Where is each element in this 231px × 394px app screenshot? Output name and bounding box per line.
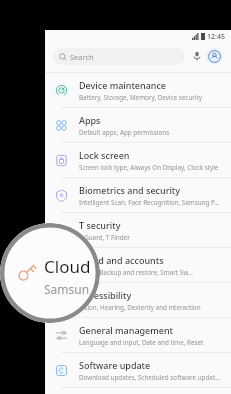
button[interactable]: Account	[206, 48, 223, 65]
button[interactable]: T security	[45, 213, 231, 248]
staticText: T Guard, T Finder	[79, 233, 130, 242]
staticText: Cloud	[44, 255, 91, 278]
button[interactable]: Magnified Cloud and accounts	[0, 223, 100, 323]
staticText: Battery, Storage, Memory, Device securit…	[79, 93, 202, 102]
button[interactable]: Device maintenance	[45, 73, 231, 108]
button[interactable]: Lock screen	[45, 143, 231, 178]
staticText: Cloud and accounts	[79, 254, 164, 266]
staticText: Device maintenance	[79, 79, 167, 91]
button[interactable]: General management	[45, 318, 231, 353]
staticText: Language and input, Date and time, Reset	[79, 338, 204, 347]
button[interactable]: Search	[53, 48, 185, 65]
staticText: Screen lock type, Always On Display, Clo…	[79, 163, 219, 172]
button[interactable]: Voice search	[190, 49, 204, 63]
staticText: Vision, Hearing, Dexterity and interacti…	[79, 303, 201, 312]
staticText: Software update	[79, 359, 151, 371]
button[interactable]: Software update	[45, 353, 231, 388]
staticText: Biometrics and security	[79, 184, 181, 196]
staticText: 12:45	[207, 32, 225, 42]
staticText: Download updates, Scheduled software upd…	[79, 373, 223, 382]
staticText: T security	[79, 219, 121, 231]
button[interactable]: Biometrics and security	[45, 178, 231, 213]
staticText: Default apps, App permissions	[79, 128, 170, 137]
staticText: Samsun	[44, 281, 90, 297]
staticText: General management	[79, 324, 174, 336]
staticText: Search	[70, 52, 94, 62]
staticText: Lock screen	[79, 149, 130, 161]
button[interactable]: Apps	[45, 108, 231, 143]
staticText: Cloud, Backup and restore, Smart Sw...	[79, 268, 193, 277]
button[interactable]: Accessibility	[45, 283, 231, 318]
staticText: Intelligent Scan, Face Recognition, Sams…	[79, 198, 220, 207]
button[interactable]: Cloud and accounts	[45, 248, 231, 283]
staticText: Apps	[79, 114, 101, 126]
staticText: Accessibility	[79, 289, 132, 301]
